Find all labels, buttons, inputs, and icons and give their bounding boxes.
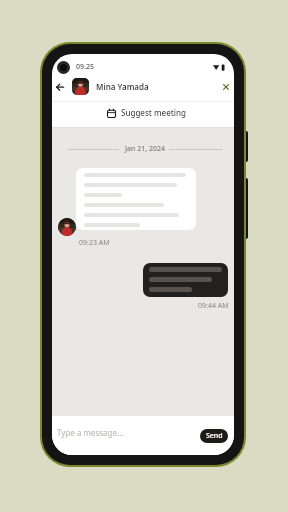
staticText: 09.25 (76, 62, 94, 72)
button[interactable] (219, 80, 233, 94)
staticText: Send (206, 431, 223, 441)
staticText: 09:44 AM (198, 301, 229, 311)
staticText: Mina Yamada (96, 81, 149, 92)
button[interactable]: Suggest meeting (102, 104, 184, 123)
button[interactable] (53, 80, 67, 94)
staticText: Suggest meeting (121, 107, 186, 118)
staticText: 09:23 AM (79, 238, 110, 248)
staticText: Type a message... (57, 427, 124, 438)
staticText: Jan 21, 2024 (125, 144, 165, 154)
button[interactable]: Send (200, 429, 228, 443)
